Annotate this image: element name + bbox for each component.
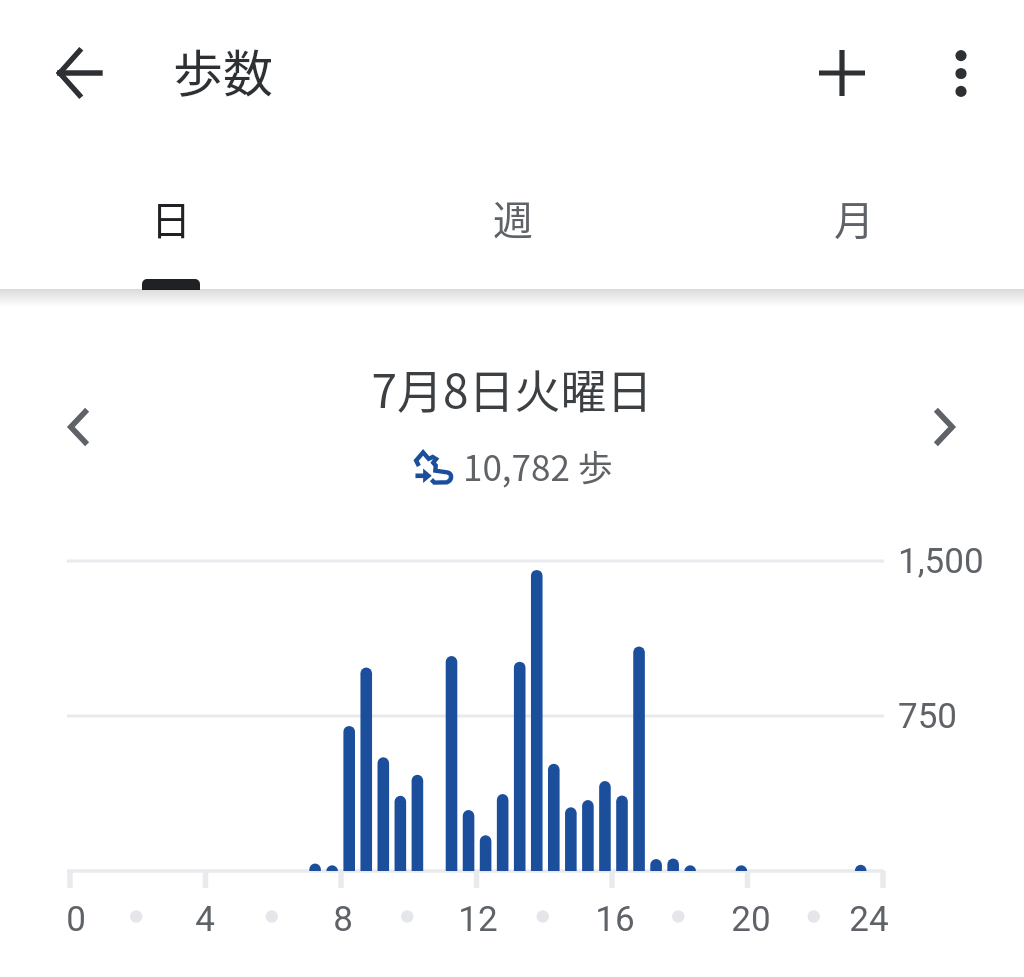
staticText: 750 [898, 696, 958, 737]
staticText: 0 [26, 899, 126, 940]
button[interactable]: Previous day [48, 397, 108, 457]
staticText: 1,500 [898, 541, 984, 582]
button[interactable]: 月 [683, 146, 1024, 290]
button[interactable]: More options [922, 34, 1000, 112]
staticText: 10,782 歩 [463, 440, 613, 491]
staticText: 週 [493, 189, 533, 247]
button[interactable]: Back [40, 34, 118, 112]
staticText: 20 [701, 899, 801, 940]
staticText: 16 [565, 899, 665, 940]
staticText: 8 [293, 899, 393, 940]
staticText: 日 [151, 189, 191, 247]
button[interactable]: Add [803, 34, 881, 112]
button[interactable]: 週 [342, 146, 683, 290]
button[interactable]: Next day [915, 397, 975, 457]
button[interactable]: 日 [0, 146, 342, 290]
staticText: 月 [834, 189, 874, 247]
staticText: 歩数 [173, 34, 273, 106]
staticText: 7月8日火曜日 [0, 355, 1024, 422]
staticText: 12 [428, 899, 528, 940]
staticText: 4 [155, 899, 255, 940]
staticText: 24 [819, 899, 919, 940]
